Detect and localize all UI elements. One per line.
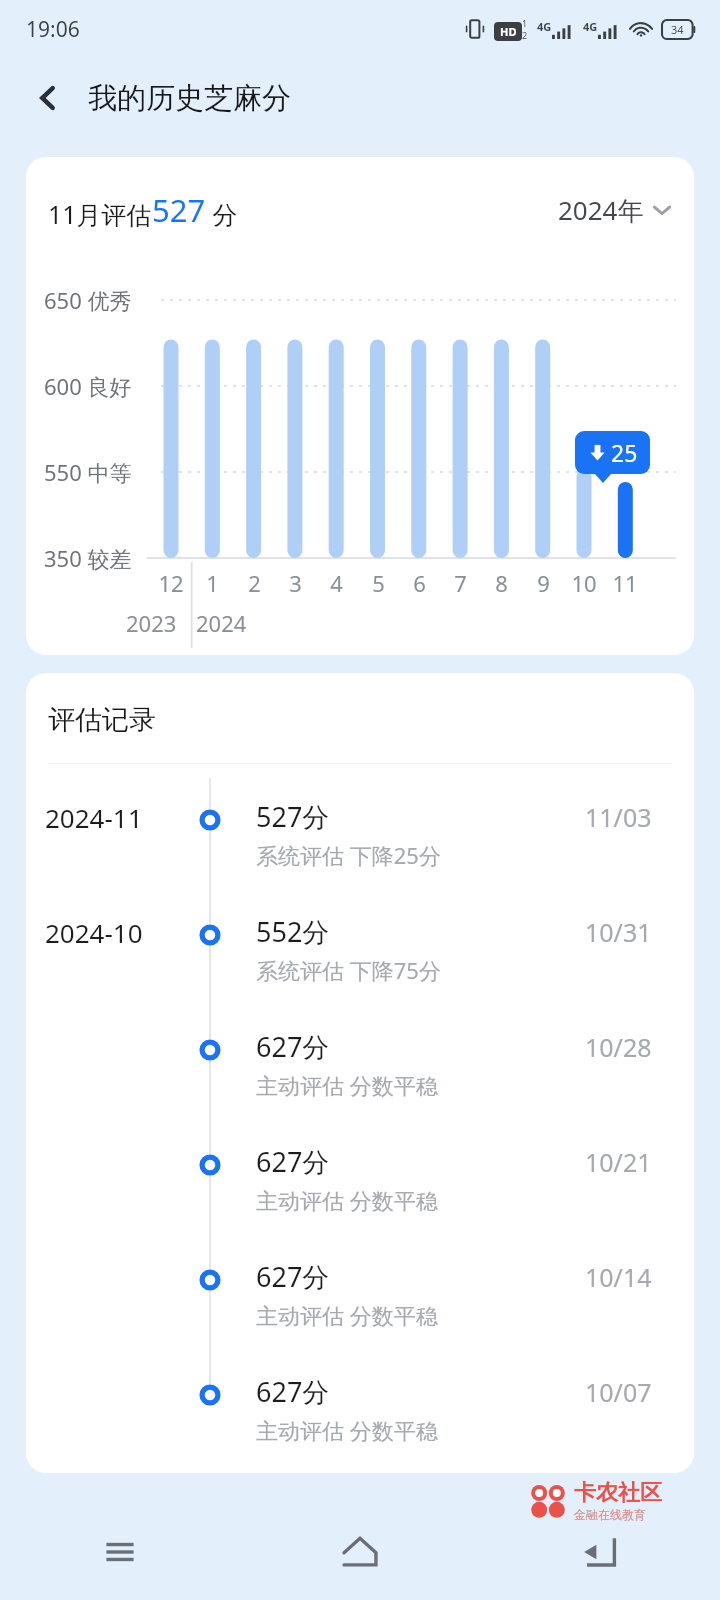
staticText: 10/14	[585, 1260, 652, 1294]
staticText: 350 较差	[44, 543, 132, 573]
button[interactable]: 2024年	[558, 192, 672, 228]
staticText: 527	[152, 189, 206, 231]
staticText: 1	[522, 17, 528, 29]
staticText: 2023	[126, 608, 177, 638]
staticText: 10/31	[585, 915, 652, 949]
staticText: HD	[500, 24, 517, 39]
staticText: 12	[158, 568, 184, 598]
button[interactable]: Back	[22, 72, 74, 124]
staticText: 6	[413, 568, 426, 598]
staticText: 8	[495, 568, 508, 598]
staticText: 627分	[256, 1258, 330, 1295]
button[interactable]: 627分	[26, 1123, 694, 1238]
staticText: 主动评估 分数平稳	[256, 1070, 438, 1100]
button[interactable]: Home	[240, 1504, 480, 1600]
staticText: 650 优秀	[44, 285, 132, 315]
staticText: 我的历史芝麻分	[88, 80, 291, 117]
staticText: 2024	[196, 608, 247, 638]
staticText: 2	[522, 29, 528, 41]
button[interactable]: 2024-11	[26, 778, 694, 893]
staticText: 527分	[256, 798, 330, 835]
staticText: 627分	[256, 1143, 330, 1180]
staticText: 4G	[583, 19, 598, 34]
staticText: 600 良好	[44, 371, 132, 401]
staticText: 评估记录	[48, 703, 156, 737]
staticText: 系统评估 下降25分	[256, 840, 441, 870]
staticText: 10/07	[585, 1375, 652, 1409]
staticText: 10/28	[585, 1030, 652, 1064]
staticText: 11	[612, 568, 638, 598]
button[interactable]: 627分	[26, 1353, 694, 1468]
staticText: 2024年	[558, 192, 644, 228]
staticText: 系统评估 下降75分	[256, 955, 441, 985]
staticText: 金融在线教育	[574, 1507, 646, 1522]
staticText: 34	[671, 22, 684, 37]
staticText: 11/03	[585, 800, 652, 834]
button[interactable]: 627分	[26, 1238, 694, 1353]
staticText: 4G	[537, 19, 552, 34]
staticText: 主动评估 分数平稳	[256, 1185, 438, 1215]
button[interactable]: Recents	[0, 1504, 240, 1600]
staticText: 主动评估 分数平稳	[256, 1415, 438, 1445]
staticText: 10/21	[585, 1145, 652, 1179]
staticText: 11月评估	[48, 197, 152, 231]
staticText: 25	[611, 437, 638, 468]
staticText: 9	[537, 568, 550, 598]
staticText: 分	[206, 197, 238, 231]
button[interactable]: 627分	[26, 1008, 694, 1123]
button[interactable]: 2024-10	[26, 893, 694, 1008]
staticText: 2	[248, 568, 261, 598]
staticText: 627分	[256, 1373, 330, 1410]
staticText: 550 中等	[44, 457, 132, 487]
staticText: 5	[372, 568, 385, 598]
staticText: 627分	[256, 1028, 330, 1065]
button[interactable]: Back	[480, 1504, 720, 1600]
staticText: 2024-10	[45, 915, 143, 950]
staticText: 主动评估 分数平稳	[256, 1300, 438, 1330]
staticText: 2024-11	[45, 800, 143, 835]
staticText: 7	[454, 568, 467, 598]
staticText: 19:06	[26, 15, 80, 44]
staticText: 4	[330, 568, 343, 598]
staticText: 卡农社区	[574, 1479, 662, 1507]
staticText: 552分	[256, 913, 330, 950]
staticText: 1	[206, 568, 219, 598]
staticText: 10	[571, 568, 597, 598]
staticText: 3	[289, 568, 302, 598]
